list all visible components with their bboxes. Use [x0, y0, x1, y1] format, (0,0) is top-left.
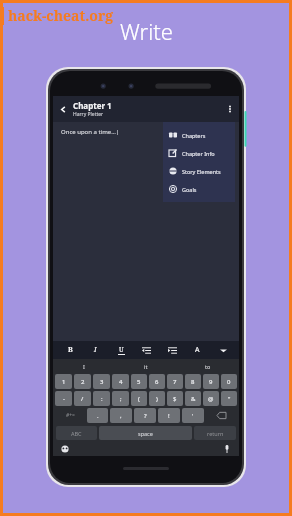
staticText: to [205, 363, 211, 370]
button[interactable]: 7 [167, 374, 183, 389]
button[interactable]: Goals [163, 180, 235, 198]
button[interactable]: Chapter Info [163, 144, 235, 162]
staticText: ? [144, 412, 147, 420]
button[interactable]: 8 [185, 374, 201, 389]
button[interactable]: ' [182, 408, 204, 423]
button[interactable]: return [194, 426, 236, 440]
button[interactable]: 2 [74, 374, 91, 389]
button[interactable]: 4 [112, 374, 129, 389]
staticText: Goals [182, 186, 197, 193]
staticText: & [191, 395, 196, 403]
button[interactable]: space [99, 426, 192, 440]
button[interactable]: & [185, 391, 201, 406]
button[interactable]: 5 [131, 374, 147, 389]
staticText: ; [120, 395, 122, 403]
button[interactable]: - [55, 391, 72, 406]
staticText: $ [173, 395, 177, 403]
staticText: #+= [66, 412, 75, 419]
button[interactable]: Expand [214, 341, 232, 359]
staticText: Chapters [182, 132, 206, 139]
button[interactable]: @ [203, 391, 219, 406]
button[interactable]: Indent decrease [137, 341, 155, 359]
button[interactable]: to [177, 359, 239, 373]
staticText: - [63, 395, 65, 403]
staticText: B [68, 345, 73, 355]
button[interactable]: Story Elements [163, 162, 235, 180]
button[interactable]: ( [131, 391, 147, 406]
button[interactable]: More options [221, 96, 239, 122]
staticText: Harry Pletter [73, 111, 104, 118]
button[interactable]: Backspace [206, 408, 237, 423]
button[interactable]: 9 [203, 374, 219, 389]
staticText: 5 [137, 378, 141, 386]
staticText: Story Elements [182, 168, 221, 175]
button[interactable]: , [110, 408, 132, 423]
staticText: A [195, 345, 200, 355]
staticText: I [83, 363, 85, 370]
button[interactable]: 3 [93, 374, 110, 389]
button[interactable]: : [93, 391, 110, 406]
button[interactable]: Emoji [59, 443, 71, 455]
button[interactable]: $ [167, 391, 183, 406]
staticText: ( [138, 395, 140, 403]
staticText: U [119, 345, 124, 354]
button[interactable]: Indent increase [163, 341, 181, 359]
staticText: . [97, 412, 99, 420]
button[interactable]: 1 [55, 374, 72, 389]
button[interactable]: ? [134, 408, 156, 423]
staticText: I [94, 345, 97, 355]
staticText: , [120, 412, 122, 420]
button[interactable]: ! [158, 408, 180, 423]
button[interactable]: Underline [112, 341, 130, 359]
staticText: Chapter Info [182, 150, 215, 157]
staticText: 4 [119, 378, 123, 386]
button[interactable]: Italic [86, 341, 104, 359]
button[interactable]: 0 [221, 374, 237, 389]
staticText: / [81, 395, 84, 403]
staticText: Once upon a time...| [61, 128, 120, 136]
staticText: @ [208, 395, 214, 403]
staticText: Write [120, 16, 173, 46]
staticText: 0 [227, 378, 231, 386]
staticText: ! [168, 412, 170, 420]
button[interactable]: ) [149, 391, 165, 406]
button[interactable]: Chapters [163, 126, 235, 144]
staticText: ABC [71, 430, 82, 437]
button[interactable]: ABC [56, 426, 97, 440]
button[interactable]: #+= [55, 408, 85, 423]
staticText: 3 [100, 378, 104, 386]
button[interactable]: . [87, 408, 108, 423]
staticText: ' [192, 412, 194, 420]
button[interactable]: 6 [149, 374, 165, 389]
staticText: it [144, 363, 148, 370]
button[interactable]: it [115, 359, 177, 373]
button[interactable]: / [74, 391, 91, 406]
staticText: hack-cheat.org [8, 6, 114, 25]
button[interactable]: " [221, 391, 237, 406]
staticText: 9 [209, 378, 213, 386]
staticText: ) [156, 395, 158, 403]
button[interactable]: Voice input [221, 443, 233, 455]
staticText: 6 [155, 378, 159, 386]
button[interactable]: I [53, 359, 115, 373]
button[interactable]: Bold [61, 341, 79, 359]
staticText: 7 [173, 378, 177, 386]
button[interactable]: Text style [188, 341, 206, 359]
staticText: Chapter 1 [73, 100, 112, 111]
button[interactable]: ; [112, 391, 129, 406]
staticText: : [101, 395, 103, 403]
staticText: " [228, 395, 231, 403]
staticText: 1 [62, 378, 66, 386]
staticText: space [138, 430, 153, 437]
staticText: 8 [191, 378, 195, 386]
button[interactable]: Back [53, 96, 73, 122]
staticText: 2 [81, 378, 85, 386]
staticText: return [207, 430, 224, 437]
